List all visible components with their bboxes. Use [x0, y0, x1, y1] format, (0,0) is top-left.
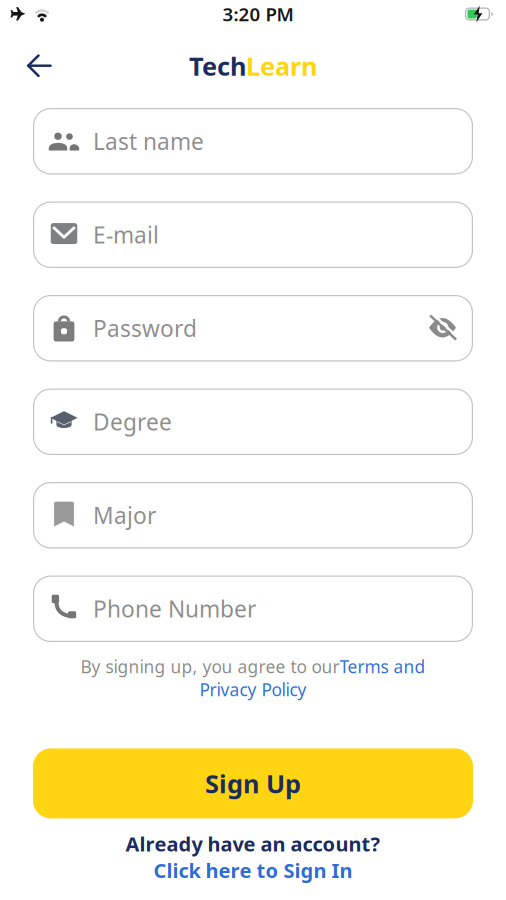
button[interactable]: Password — [33, 295, 473, 361]
button[interactable]: Major — [33, 482, 473, 548]
button[interactable]: Already have an account? — [125, 830, 380, 883]
staticText: Last name — [93, 126, 204, 156]
button[interactable]: Privacy Policy — [199, 678, 306, 701]
button[interactable]: E-mail — [33, 201, 473, 268]
staticText: Click here to Sign In — [153, 857, 352, 883]
staticText: E-mail — [93, 220, 159, 250]
button[interactable]: Back — [0, 54, 52, 77]
button[interactable]: Show password — [428, 314, 456, 342]
button[interactable]: Last name — [33, 108, 473, 174]
button[interactable]: Degree — [33, 388, 473, 455]
staticText: Degree — [93, 407, 172, 437]
button[interactable]: Terms and — [339, 655, 425, 678]
staticText: Password — [93, 313, 197, 343]
staticText: By signing up, you agree to our — [80, 655, 339, 678]
staticText: Terms and — [339, 655, 425, 678]
staticText: Major — [93, 500, 156, 530]
button[interactable]: Phone Number — [33, 575, 473, 642]
staticText: 3:20 PM — [222, 2, 293, 26]
staticText: Privacy Policy — [199, 678, 306, 701]
staticText: Learn — [246, 49, 317, 83]
staticText: Sign Up — [205, 767, 301, 800]
button[interactable]: Sign Up — [33, 748, 473, 818]
staticText: Phone Number — [93, 594, 256, 624]
staticText: Tech — [189, 49, 246, 83]
staticText: Already have an account? — [125, 830, 380, 857]
